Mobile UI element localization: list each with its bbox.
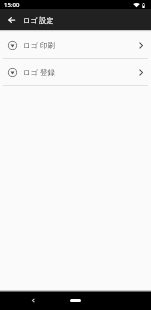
button[interactable]: ロゴ 登録 xyxy=(0,59,151,85)
staticText: ロゴ 登録 xyxy=(23,67,55,77)
button[interactable]: Back xyxy=(0,9,22,30)
button[interactable]: Home xyxy=(70,299,81,302)
staticText: ロゴ 印刷 xyxy=(23,40,55,50)
button[interactable]: Back xyxy=(27,294,39,306)
staticText: 15:00 xyxy=(4,1,20,9)
staticText: ロゴ 設定 xyxy=(23,15,54,25)
button[interactable]: ロゴ 印刷 xyxy=(0,32,151,58)
